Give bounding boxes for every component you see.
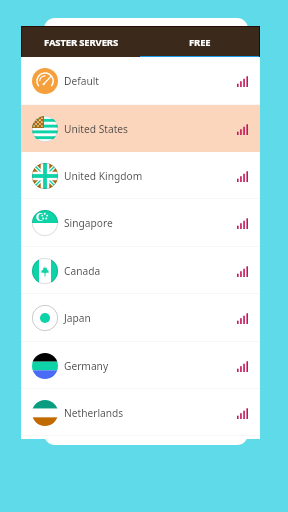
staticText: Default	[64, 74, 100, 88]
staticText: Germany	[64, 359, 109, 373]
button[interactable]: United States	[21, 105, 260, 152]
button[interactable]: Default	[21, 57, 260, 104]
button[interactable]: Singapore	[21, 199, 260, 246]
button[interactable]: FREE	[140, 26, 260, 58]
button[interactable]: Japan	[21, 294, 260, 341]
other: Signal strength	[237, 217, 248, 228]
staticText: United Kingdom	[64, 169, 143, 183]
other: Signal strength	[237, 170, 248, 181]
staticText: Netherlands	[64, 406, 124, 420]
staticText: Japan	[64, 311, 91, 325]
other: Signal strength	[237, 360, 248, 371]
button[interactable]: FASTER SERVERS	[21, 26, 140, 58]
button[interactable]: Germany	[21, 342, 260, 389]
button[interactable]: United Kingdom	[21, 152, 260, 199]
other: Signal strength	[237, 75, 248, 86]
staticText: Singapore	[64, 216, 113, 230]
other: Signal strength	[237, 407, 248, 418]
button[interactable]: Netherlands	[21, 389, 260, 436]
staticText: FREE	[189, 36, 211, 49]
staticText: United States	[64, 122, 128, 136]
staticText: Canada	[64, 264, 101, 278]
other: Signal strength	[237, 265, 248, 276]
other: Signal strength	[237, 312, 248, 323]
staticText: FASTER SERVERS	[44, 36, 118, 49]
button[interactable]: Canada	[21, 247, 260, 294]
other: Signal strength	[237, 123, 248, 134]
